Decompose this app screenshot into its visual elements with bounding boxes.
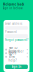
button[interactable]: Sign In [5,65,28,69]
staticText: Need some help? [8,51,16,62]
button[interactable]: Face ID login [5,48,28,51]
button[interactable]: Forgot password? [5,38,28,42]
button[interactable]: Need some help? [5,55,28,59]
staticText: Forgot password? [5,38,28,42]
staticText: Face ID login [8,46,17,53]
staticText: Sign in below [2,6,22,10]
staticText: Welcome back [2,3,24,6]
staticText: Password [5,30,17,34]
button[interactable]: Remember me [5,51,28,55]
staticText: Sign In [11,65,21,68]
staticText: Remember me [8,50,23,57]
staticText: Email address [5,22,22,25]
